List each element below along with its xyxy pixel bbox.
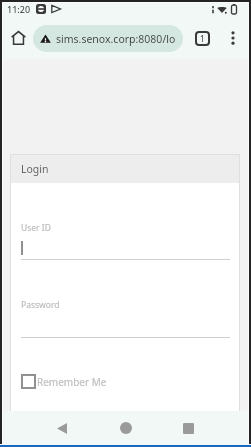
button[interactable]: Back xyxy=(47,413,77,443)
button[interactable]: Tabs xyxy=(188,24,216,52)
staticText: 1 xyxy=(200,33,205,44)
staticText: sims.senox.corp:8080/lo xyxy=(56,32,176,46)
staticText: Remember Me xyxy=(37,375,107,389)
staticText: User ID xyxy=(21,222,51,234)
button[interactable]: Recents xyxy=(173,413,203,443)
staticText: Login xyxy=(21,162,49,176)
button[interactable]: sims.senox.corp:8080/lo xyxy=(33,25,183,52)
staticText: 11:20 xyxy=(7,3,31,15)
button[interactable]: Home xyxy=(5,24,31,52)
button[interactable]: Remember Me xyxy=(21,374,107,389)
staticText: Password xyxy=(21,299,60,311)
button[interactable]: More options xyxy=(220,24,246,52)
button[interactable]: Home xyxy=(111,413,141,443)
